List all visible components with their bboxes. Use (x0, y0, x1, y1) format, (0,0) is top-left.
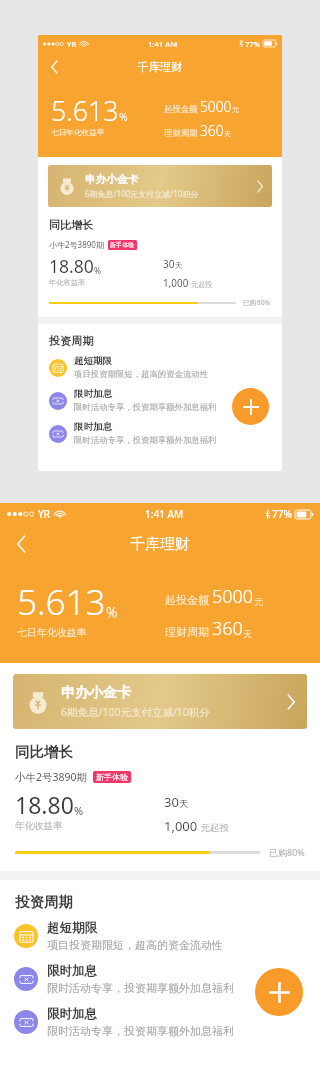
staticText: 限时活动专享，投资期享额外加息福利 (74, 402, 217, 413)
button[interactable]: 限时加息 (0, 963, 320, 995)
staticText: 项目投资期限短，超高的资金流动性 (74, 369, 208, 380)
staticText: 6期免息/100元支付立减/10积分 (61, 705, 210, 719)
staticText: 同比增长 (49, 218, 94, 232)
staticText: 360 (200, 121, 224, 140)
staticText: 限时活动专享，投资期享额外加息福利 (47, 981, 234, 995)
button[interactable]: 申办小金卡 (48, 165, 272, 207)
staticText: 已购80% (269, 846, 305, 858)
staticText: 1,000 (163, 276, 189, 290)
button[interactable]: 限时加息 (0, 1006, 320, 1038)
staticText: 限时活动专享，投资期享额外加息福利 (47, 1024, 234, 1038)
staticText: 限时加息 (74, 421, 113, 433)
staticText: 5000 (212, 584, 254, 609)
staticText: 元起投 (189, 279, 213, 289)
staticText: % (119, 110, 128, 125)
button[interactable]: 限时加息 (38, 421, 282, 446)
staticText: 天 (243, 628, 252, 639)
staticText: % (106, 603, 118, 622)
staticText: 理财周期 (164, 127, 200, 138)
staticText: 申办小金卡 (85, 173, 139, 186)
staticText: 超短期限 (47, 920, 97, 936)
staticText: 30 (164, 793, 179, 811)
staticText: 1,000 (164, 817, 198, 835)
staticText: 千库理财 (130, 535, 190, 554)
staticText: 七日年化收益率 (51, 128, 105, 138)
staticText: 限时加息 (47, 963, 97, 979)
staticText: 元 (254, 596, 263, 607)
staticText: 项目投资期限短，超高的资金流动性 (47, 938, 223, 952)
staticText: 小牛2号3890期 (15, 770, 88, 784)
staticText: 天 (179, 798, 189, 810)
staticText: 18.80 (15, 789, 74, 820)
staticText: 理财周期 (165, 624, 212, 639)
staticText: 起投金额 (165, 592, 212, 607)
staticText: 起投金额 (164, 103, 200, 114)
staticText: 千库理财 (137, 60, 183, 74)
staticText: 同比增长 (15, 743, 73, 761)
staticText: YR (38, 507, 51, 521)
staticText: 限时活动专享，投资期享额外加息福利 (74, 435, 217, 446)
staticText: 投资周期 (15, 893, 73, 911)
staticText: 元 (232, 105, 239, 114)
staticText: 1:41 AM (148, 39, 178, 49)
staticText: 投资周期 (49, 334, 94, 348)
staticText: 5.613 (17, 578, 106, 626)
staticText: 新手体验 (110, 241, 135, 249)
staticText: 小牛2号3890期 (49, 239, 104, 250)
button[interactable]: 限时加息 (38, 388, 282, 413)
staticText: 已购80% (243, 298, 271, 307)
staticText: 七日年化收益率 (17, 626, 87, 639)
staticText: 限时加息 (74, 388, 113, 400)
button[interactable]: 超短期限 (38, 355, 282, 380)
staticText: 30 (163, 257, 175, 271)
button[interactable]: Add (232, 388, 269, 425)
staticText: 超短期限 (74, 355, 113, 367)
staticText: 天 (224, 129, 231, 138)
staticText: 年化收益率 (15, 820, 63, 832)
button[interactable]: 申办小金卡 (13, 674, 307, 729)
staticText: 限时加息 (47, 1006, 97, 1022)
button[interactable]: Add (255, 968, 303, 1016)
staticText: YR (67, 39, 77, 49)
button[interactable]: Back (6, 529, 36, 559)
staticText: 年化收益率 (49, 278, 86, 287)
staticText: 77% (245, 39, 261, 49)
staticText: 新手体验 (96, 772, 128, 782)
staticText: % (74, 803, 84, 818)
staticText: % (94, 265, 101, 276)
staticText: 18.80 (49, 254, 94, 278)
staticText: 天 (175, 261, 183, 270)
button[interactable]: 超短期限 (0, 920, 320, 952)
staticText: 申办小金卡 (61, 684, 131, 702)
staticText: 5.613 (51, 92, 119, 128)
staticText: 77% (272, 507, 292, 521)
staticText: 6期免息/100元支付立减/10积分 (85, 188, 199, 199)
staticText: 1:41 AM (145, 507, 184, 521)
staticText: 元起投 (198, 821, 229, 834)
staticText: 360 (212, 616, 243, 641)
staticText: 5000 (200, 97, 232, 116)
button[interactable]: Back (43, 55, 66, 78)
